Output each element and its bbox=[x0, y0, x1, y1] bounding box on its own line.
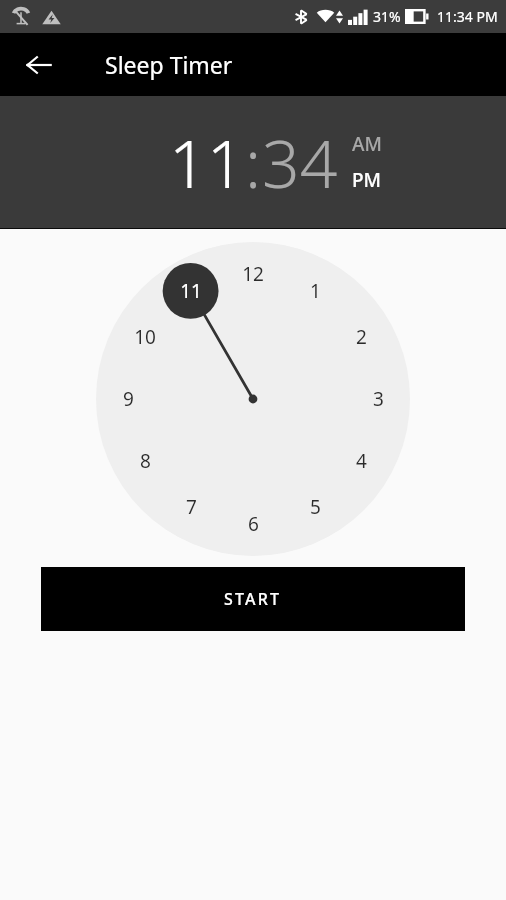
button[interactable]: 12 bbox=[225, 246, 281, 302]
button[interactable]: START bbox=[41, 567, 465, 631]
staticText: 4 bbox=[356, 448, 367, 474]
button[interactable]: 7 bbox=[163, 479, 219, 535]
button[interactable]: 8 bbox=[117, 433, 173, 489]
button[interactable]: 4 bbox=[333, 433, 389, 489]
staticText: 34 bbox=[262, 117, 338, 207]
staticText: 10 bbox=[134, 324, 156, 350]
button[interactable]: 5 bbox=[287, 479, 343, 535]
button[interactable]: 1 bbox=[287, 263, 343, 319]
button[interactable]: AM bbox=[352, 129, 382, 159]
staticText: PM bbox=[352, 167, 382, 193]
button[interactable]: Back bbox=[14, 40, 64, 90]
staticText: Sleep Timer bbox=[105, 49, 233, 80]
button[interactable]: 11 bbox=[169, 117, 245, 207]
staticText: 11:34 PM bbox=[437, 7, 498, 26]
button[interactable]: 10 bbox=[117, 309, 173, 365]
staticText: 6 bbox=[248, 511, 259, 537]
staticText: 3 bbox=[373, 386, 384, 412]
staticText: 12 bbox=[242, 261, 264, 287]
staticText: 5 bbox=[310, 494, 321, 520]
staticText: START bbox=[224, 588, 282, 610]
staticText: 7 bbox=[186, 494, 197, 520]
button[interactable]: 2 bbox=[333, 309, 389, 365]
staticText: 31% bbox=[373, 7, 401, 26]
staticText: AM bbox=[352, 131, 382, 157]
staticText: 2 bbox=[356, 324, 367, 350]
button[interactable]: 9 bbox=[100, 371, 156, 427]
staticText: 11 bbox=[180, 278, 202, 304]
button[interactable]: 3 bbox=[350, 371, 406, 427]
staticText: 11 bbox=[169, 117, 245, 207]
button[interactable]: 34 bbox=[262, 117, 338, 207]
staticText: 8 bbox=[140, 448, 151, 474]
staticText: 9 bbox=[123, 386, 134, 412]
button[interactable]: 11 bbox=[163, 263, 219, 319]
staticText: 1 bbox=[310, 278, 321, 304]
button[interactable]: 6 bbox=[225, 496, 281, 552]
button[interactable]: PM bbox=[352, 165, 382, 195]
staticText: : bbox=[245, 117, 262, 207]
